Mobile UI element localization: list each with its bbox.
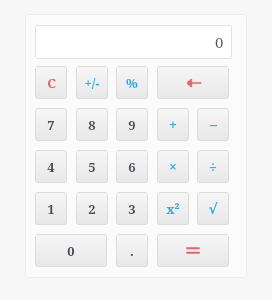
button[interactable]: – xyxy=(197,108,229,141)
button[interactable]: × xyxy=(157,150,189,183)
staticText: 9 xyxy=(128,116,136,134)
staticText: + xyxy=(169,115,177,134)
staticText: √ xyxy=(208,201,218,217)
button[interactable]: 2 xyxy=(76,192,108,225)
button[interactable]: 1 xyxy=(35,192,67,225)
staticText: C xyxy=(47,74,56,92)
staticText: . xyxy=(130,242,134,260)
button[interactable]: + xyxy=(157,108,189,141)
staticText: – xyxy=(210,115,217,134)
button[interactable]: % xyxy=(116,66,148,99)
staticText: 6 xyxy=(128,158,136,176)
staticText: ÷ xyxy=(209,157,217,176)
button[interactable]: +/- xyxy=(76,66,108,99)
button[interactable]: 3 xyxy=(116,192,148,225)
button[interactable]: Backspace xyxy=(157,66,229,99)
button[interactable]: 0 xyxy=(35,25,232,59)
button[interactable]: 7 xyxy=(35,108,67,141)
button[interactable]: 5 xyxy=(76,150,108,183)
staticText: 1 xyxy=(47,200,55,218)
button[interactable]: x² xyxy=(157,192,189,225)
button[interactable]: 6 xyxy=(116,150,148,183)
staticText: 5 xyxy=(88,158,96,176)
button[interactable]: 9 xyxy=(116,108,148,141)
staticText: 4 xyxy=(47,158,55,176)
staticText: 3 xyxy=(128,200,136,218)
staticText: 2 xyxy=(88,200,96,218)
button[interactable]: 8 xyxy=(76,108,108,141)
staticText: 8 xyxy=(88,116,96,134)
button[interactable]: 4 xyxy=(35,150,67,183)
button[interactable]: . xyxy=(116,234,148,267)
staticText: x² xyxy=(166,200,180,218)
staticText: +/- xyxy=(84,74,100,92)
button[interactable]: Equals xyxy=(157,234,229,267)
button[interactable]: C xyxy=(35,66,67,99)
staticText: 0 xyxy=(67,242,75,260)
button[interactable]: ÷ xyxy=(197,150,229,183)
staticText: 7 xyxy=(47,116,55,134)
button[interactable]: √ xyxy=(197,192,229,225)
staticText: 0 xyxy=(215,32,224,52)
staticText: × xyxy=(169,157,177,176)
staticText: % xyxy=(126,74,138,92)
button[interactable]: 0 xyxy=(35,234,107,267)
